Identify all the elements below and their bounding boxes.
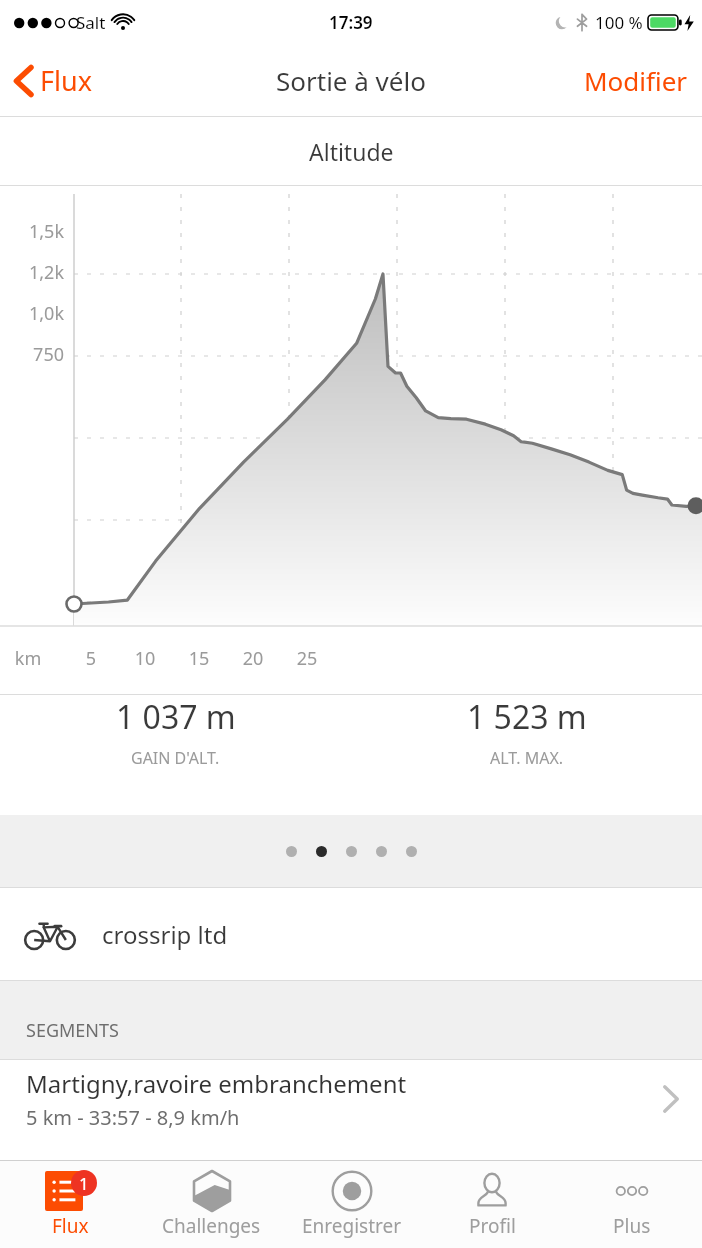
other: Flux (45, 1171, 83, 1211)
staticText: 1 037 m (116, 695, 236, 739)
staticText: 1 (79, 1172, 89, 1195)
staticText: 10 (120, 646, 170, 671)
staticText: 1 523 m (467, 695, 587, 739)
staticText: Salt (76, 11, 106, 34)
staticText: 20 (228, 646, 278, 671)
staticText: 17:39 (329, 11, 373, 34)
staticText: 1,0k (16, 301, 64, 326)
other: Enregistrer (331, 1170, 373, 1212)
staticText: 5 km - 33:57 - 8,9 km/h (26, 1104, 240, 1131)
staticText: Challenges (162, 1213, 261, 1239)
button[interactable]: Flux (0, 1161, 141, 1248)
staticText: 1,5k (16, 219, 64, 244)
button[interactable]: Profil (422, 1161, 562, 1248)
staticText: 25 (282, 646, 332, 671)
staticText: 15 (174, 646, 224, 671)
staticText: GAIN D'ALT. (131, 747, 220, 769)
button[interactable]: Challenges (141, 1161, 282, 1248)
other: Challenges (192, 1171, 232, 1211)
button[interactable]: Plus (562, 1161, 702, 1248)
staticText: Modifier (584, 63, 688, 98)
staticText: Enregistrer (302, 1213, 402, 1239)
staticText: 1,2k (16, 260, 64, 285)
staticText: Martigny,ravoire embranchement (26, 1067, 407, 1100)
staticText: Altitude (309, 136, 394, 167)
staticText: 5 (66, 646, 116, 671)
button[interactable]: Flux (0, 56, 102, 105)
staticText: SEGMENTS (26, 1018, 119, 1043)
staticText: Plus (613, 1213, 651, 1239)
staticText: ALT. MAX. (490, 747, 564, 769)
staticText: Sortie à vélo (276, 63, 426, 98)
staticText: Flux (52, 1213, 89, 1239)
other: Profil (472, 1171, 512, 1211)
staticText: Profil (469, 1213, 516, 1239)
button[interactable]: Martigny,ravoire embranchement (0, 1060, 702, 1138)
staticText: 750 (16, 342, 64, 367)
staticText: crossrip ltd (102, 918, 228, 951)
staticText: Flux (40, 62, 92, 99)
other: Plus (612, 1181, 652, 1201)
staticText: km (3, 646, 53, 671)
staticText: 100 % (595, 11, 643, 34)
button[interactable]: crossrip ltd (0, 888, 702, 980)
button[interactable]: Enregistrer (282, 1161, 422, 1248)
button[interactable]: Modifier (570, 55, 702, 106)
